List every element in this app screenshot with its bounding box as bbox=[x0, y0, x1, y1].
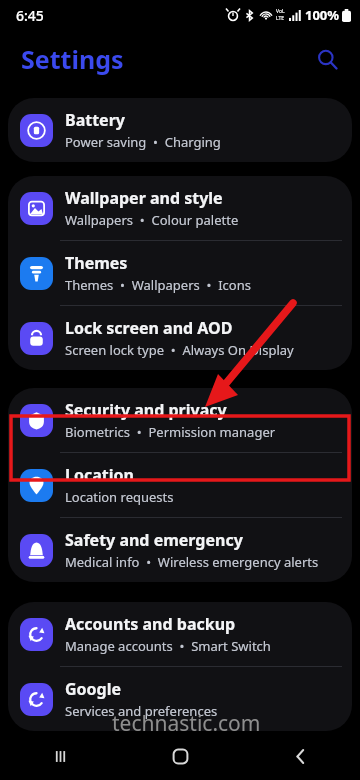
button[interactable]: Google bbox=[8, 667, 352, 731]
staticText: Manage accounts • Smart Switch bbox=[65, 637, 271, 655]
button[interactable]: Themes bbox=[8, 241, 352, 305]
staticText: Settings bbox=[21, 42, 124, 76]
staticText: Services and preferences bbox=[65, 702, 218, 720]
staticText: Biometrics • Permission manager bbox=[65, 423, 276, 441]
staticText: LTE bbox=[276, 15, 285, 22]
button[interactable]: Search bbox=[310, 42, 344, 76]
button[interactable]: Battery bbox=[8, 98, 352, 162]
staticText: Themes bbox=[65, 252, 128, 274]
button[interactable]: Safety and emergency bbox=[8, 518, 352, 582]
staticText: Power saving • Charging bbox=[65, 133, 221, 151]
button[interactable]: Security and privacy bbox=[8, 388, 352, 452]
staticText: Themes • Wallpapers • Icons bbox=[65, 276, 251, 294]
button[interactable]: Wallpaper and style bbox=[8, 176, 352, 240]
staticText: Battery bbox=[65, 109, 125, 131]
button[interactable]: Home bbox=[120, 732, 240, 780]
button[interactable]: Recents bbox=[0, 732, 120, 780]
staticText: Medical info • Wireless emergency alerts bbox=[65, 553, 319, 571]
staticText: Lock screen and AOD bbox=[65, 317, 233, 339]
staticText: 100% bbox=[305, 6, 340, 24]
button[interactable]: Back bbox=[240, 732, 360, 780]
staticText: VoL bbox=[276, 8, 285, 15]
staticText: Location requests bbox=[65, 488, 174, 506]
button[interactable]: Lock screen and AOD bbox=[8, 306, 352, 370]
staticText: 6:45 bbox=[16, 6, 44, 25]
staticText: Location bbox=[65, 464, 134, 486]
staticText: Wallpaper and style bbox=[65, 187, 223, 209]
staticText: Accounts and backup bbox=[65, 613, 236, 635]
staticText: Screen lock type • Always On Display bbox=[65, 341, 294, 359]
button[interactable]: Location bbox=[8, 453, 352, 517]
button[interactable]: Accounts and backup bbox=[8, 602, 352, 666]
staticText: Security and privacy bbox=[65, 399, 227, 421]
staticText: Wallpapers • Colour palette bbox=[65, 211, 239, 229]
staticText: technastic.com bbox=[112, 709, 261, 738]
staticText: Google bbox=[65, 678, 122, 700]
staticText: Safety and emergency bbox=[65, 529, 243, 551]
